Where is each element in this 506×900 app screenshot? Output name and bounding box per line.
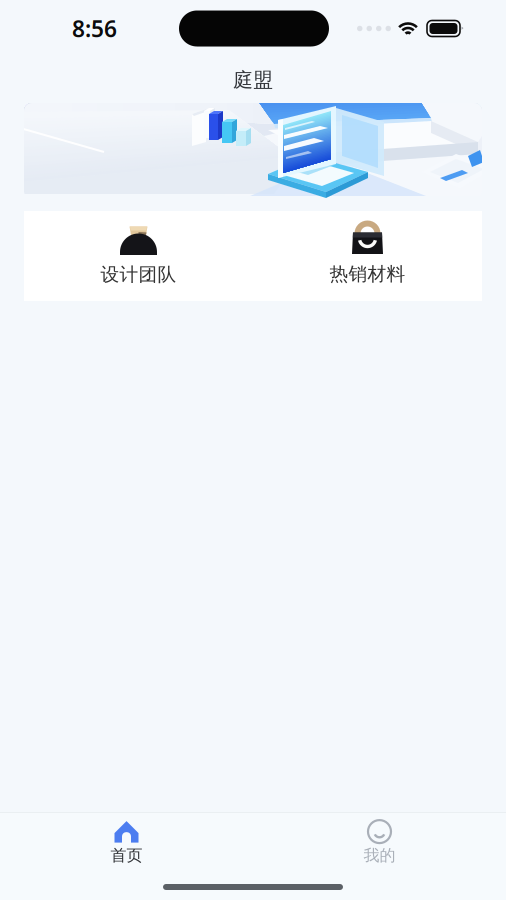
staticText: 我的 [363,846,395,865]
staticText: 8:56 [72,13,117,43]
button[interactable]: 我的 [253,813,506,872]
staticText: 热销材料 [329,262,405,285]
staticText: 首页 [110,846,142,865]
button[interactable]: 热销材料 [253,211,482,300]
staticText: 设计团队 [100,263,176,286]
button[interactable]: 设计团队 [24,211,253,301]
staticText: 庭盟 [233,68,273,92]
button[interactable]: 首页 [0,813,253,872]
